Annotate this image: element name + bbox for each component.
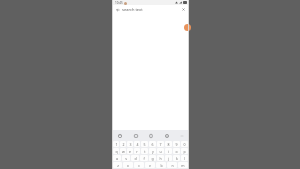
staticText: 0 [183, 142, 186, 147]
staticText: q [115, 149, 118, 154]
staticText: search text [122, 7, 143, 12]
button[interactable]: i [165, 148, 172, 154]
staticText: k [176, 156, 178, 161]
staticText: 6 [151, 142, 154, 147]
button[interactable]: c [134, 162, 144, 168]
button[interactable]: x [123, 162, 133, 168]
button[interactable]: z [113, 162, 122, 168]
staticText: b [160, 163, 163, 168]
staticText: l [184, 156, 185, 161]
button[interactable]: Back [114, 6, 121, 13]
staticText: m [181, 163, 185, 168]
button[interactable]: b [156, 162, 166, 168]
button[interactable]: a [113, 155, 121, 161]
button[interactable]: Clipboard [147, 132, 154, 139]
button[interactable]: 5 [141, 141, 148, 147]
staticText: f [143, 156, 145, 161]
button[interactable]: 1 [113, 141, 119, 147]
staticText: 4 [136, 142, 139, 147]
staticText: g [151, 156, 154, 161]
button[interactable]: 6 [149, 141, 156, 147]
button[interactable]: d [131, 155, 139, 161]
staticText: p [183, 149, 186, 154]
staticText: s [125, 156, 127, 161]
button[interactable]: g [149, 155, 156, 161]
button[interactable]: 9 [173, 141, 180, 147]
button[interactable]: r [134, 148, 140, 154]
button[interactable]: Settings [163, 132, 170, 139]
staticText: r [136, 149, 138, 154]
button[interactable]: 8 [165, 141, 172, 147]
staticText: y [152, 149, 154, 154]
button[interactable]: 2 [120, 141, 126, 147]
button[interactable]: k [173, 155, 180, 161]
staticText: 9 [175, 142, 178, 147]
button[interactable]: m [178, 162, 188, 168]
staticText: x [127, 163, 129, 168]
button[interactable]: w [120, 148, 126, 154]
staticText: o [175, 149, 178, 154]
staticText: t [144, 149, 146, 154]
button[interactable]: v [145, 162, 155, 168]
button[interactable]: f [140, 155, 148, 161]
button[interactable]: 7 [157, 141, 164, 147]
staticText: u [159, 149, 162, 154]
staticText: d [134, 156, 137, 161]
staticText: w [122, 149, 125, 154]
button[interactable]: o [173, 148, 180, 154]
staticText: 8 [167, 142, 170, 147]
staticText: e [129, 149, 131, 154]
staticText: n [171, 163, 174, 168]
button[interactable]: q [113, 148, 119, 154]
staticText: 2 [122, 142, 125, 147]
staticText: c [138, 163, 140, 168]
button[interactable]: e [127, 148, 133, 154]
button[interactable]: n [167, 162, 177, 168]
staticText: 5 [143, 142, 146, 147]
button[interactable]: search text [122, 5, 180, 14]
staticText: 10:45 [115, 1, 123, 5]
button[interactable]: j [165, 155, 172, 161]
button[interactable]: More options [178, 132, 185, 139]
staticText: v [149, 163, 151, 168]
button[interactable]: 0 [181, 141, 188, 147]
button[interactable]: h [157, 155, 164, 161]
staticText: i [168, 149, 169, 154]
staticText: j [168, 156, 169, 161]
staticText: 1 [115, 142, 118, 147]
button[interactable]: t [141, 148, 148, 154]
button[interactable]: Clear search [180, 6, 187, 13]
staticText: h [159, 156, 162, 161]
staticText: a [116, 156, 118, 161]
button[interactable]: Emoji [116, 132, 123, 139]
staticText: 3 [129, 142, 132, 147]
button[interactable]: u [157, 148, 164, 154]
staticText: 7 [159, 142, 162, 147]
button[interactable]: GIF [132, 132, 139, 139]
button[interactable]: s [122, 155, 130, 161]
staticText: z [117, 163, 119, 168]
button[interactable]: y [149, 148, 156, 154]
button[interactable]: 4 [134, 141, 140, 147]
button[interactable]: p [181, 148, 188, 154]
button[interactable]: 3 [127, 141, 133, 147]
button[interactable]: l [181, 155, 188, 161]
